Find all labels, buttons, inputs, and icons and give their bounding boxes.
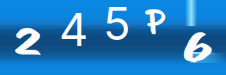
staticText: 6 <box>182 19 203 74</box>
staticText: P <box>145 0 161 44</box>
staticText: 2 <box>13 16 30 66</box>
staticText: 5 <box>103 0 131 51</box>
staticText: 4 <box>59 2 88 57</box>
